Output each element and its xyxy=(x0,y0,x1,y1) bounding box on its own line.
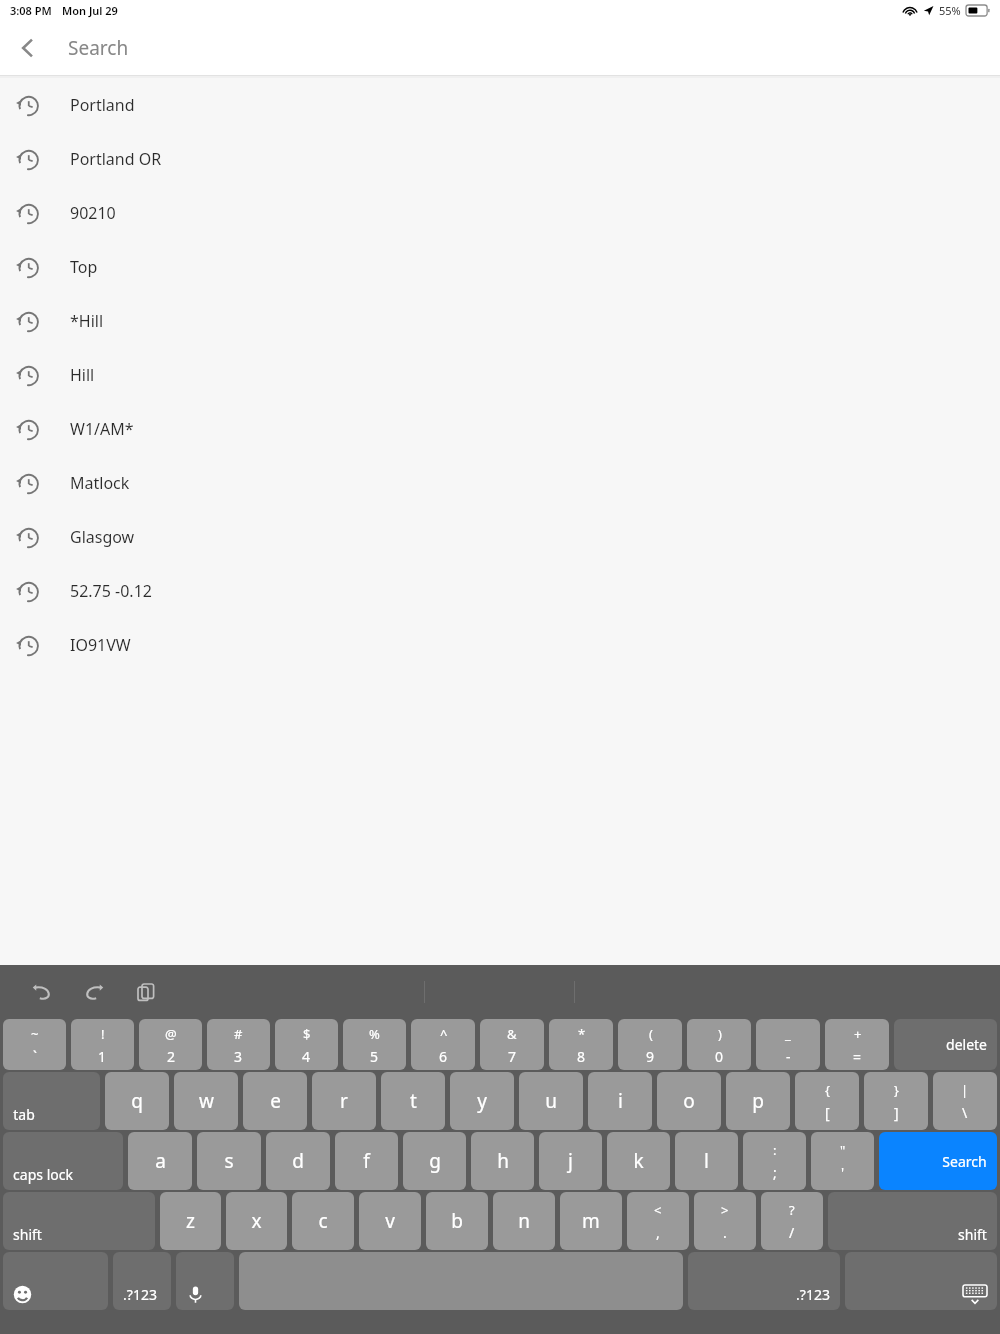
staticText: ` xyxy=(33,1047,37,1064)
staticText: b xyxy=(451,1208,463,1234)
staticText: ] xyxy=(894,1103,899,1122)
staticText: & xyxy=(507,1025,517,1043)
button[interactable]: Redo xyxy=(74,972,114,1012)
staticText: 5 xyxy=(370,1047,379,1064)
button[interactable]: e xyxy=(243,1072,307,1130)
staticText: 9 xyxy=(646,1047,655,1064)
button[interactable]: { xyxy=(795,1072,859,1130)
staticText: s xyxy=(224,1148,234,1174)
button[interactable]: Top xyxy=(0,240,1000,294)
button[interactable]: % xyxy=(343,1019,406,1070)
button[interactable]: x xyxy=(226,1192,287,1250)
button[interactable]: q xyxy=(105,1072,169,1130)
staticText: z xyxy=(186,1208,195,1234)
button[interactable]: Back xyxy=(0,20,56,75)
button[interactable]: > xyxy=(694,1192,756,1250)
staticText: ; xyxy=(773,1163,777,1182)
button[interactable]: c xyxy=(292,1192,354,1250)
button[interactable]: m xyxy=(560,1192,622,1250)
button[interactable]: f xyxy=(335,1132,398,1190)
button[interactable]: .?123 xyxy=(688,1252,840,1310)
button[interactable]: shift xyxy=(828,1192,997,1250)
button[interactable]: ~ xyxy=(3,1019,66,1070)
button[interactable]: Portland xyxy=(0,78,1000,132)
button[interactable]: | xyxy=(933,1072,997,1130)
button[interactable]: _ xyxy=(756,1019,820,1070)
button[interactable]: Undo xyxy=(22,972,62,1012)
button[interactable]: Matlock xyxy=(0,456,1000,510)
button[interactable]: } xyxy=(864,1072,928,1130)
button[interactable]: z xyxy=(160,1192,221,1250)
button[interactable]: # xyxy=(207,1019,270,1070)
button[interactable]: ! xyxy=(71,1019,134,1070)
button[interactable]: t xyxy=(381,1072,445,1130)
button[interactable]: Portland OR xyxy=(0,132,1000,186)
button[interactable]: v xyxy=(359,1192,421,1250)
button[interactable]: k xyxy=(607,1132,670,1190)
staticText: } xyxy=(894,1081,899,1099)
button[interactable]: < xyxy=(627,1192,689,1250)
staticText: v xyxy=(385,1208,395,1234)
button[interactable]: ( xyxy=(618,1019,682,1070)
button[interactable]: l xyxy=(675,1132,738,1190)
staticText: W1/AM* xyxy=(70,418,134,440)
staticText: w xyxy=(199,1088,214,1114)
button[interactable]: Search xyxy=(879,1132,997,1190)
staticText: # xyxy=(234,1025,243,1043)
button[interactable]: tab xyxy=(3,1072,100,1130)
button[interactable]: 90210 xyxy=(0,186,1000,240)
button[interactable]: a xyxy=(128,1132,192,1190)
staticText: q xyxy=(131,1088,143,1114)
staticText: < xyxy=(654,1201,662,1219)
button[interactable]: Hill xyxy=(0,348,1000,402)
button[interactable]: u xyxy=(519,1072,583,1130)
button[interactable]: & xyxy=(480,1019,544,1070)
button[interactable]: " xyxy=(811,1132,874,1190)
button[interactable]: s xyxy=(197,1132,261,1190)
staticText: ~ xyxy=(31,1025,39,1043)
button[interactable]: Paste xyxy=(126,972,166,1012)
button[interactable]: y xyxy=(450,1072,514,1130)
button[interactable]: W1/AM* xyxy=(0,402,1000,456)
button[interactable]: r xyxy=(312,1072,376,1130)
button[interactable]: g xyxy=(403,1132,466,1190)
button[interactable]: o xyxy=(657,1072,721,1130)
button[interactable]: w xyxy=(174,1072,238,1130)
staticText: p xyxy=(752,1088,764,1114)
button[interactable]: ? xyxy=(761,1192,823,1250)
button[interactable]: p xyxy=(726,1072,790,1130)
button[interactable]: Glasgow xyxy=(0,510,1000,564)
staticText: | xyxy=(961,1081,969,1099)
button[interactable]: @ xyxy=(139,1019,202,1070)
button[interactable]: caps lock xyxy=(3,1132,123,1190)
staticText: c xyxy=(318,1208,328,1234)
button[interactable]: j xyxy=(539,1132,602,1190)
staticText: - xyxy=(786,1047,791,1064)
button[interactable]: .?123 xyxy=(113,1252,171,1310)
staticText: Portland xyxy=(70,94,135,116)
button[interactable]: n xyxy=(493,1192,555,1250)
button[interactable]: : xyxy=(743,1132,806,1190)
staticText: 8 xyxy=(577,1047,586,1064)
button[interactable]: ^ xyxy=(411,1019,475,1070)
button[interactable]: ) xyxy=(687,1019,751,1070)
staticText: shift xyxy=(13,1225,42,1244)
button[interactable]: h xyxy=(471,1132,534,1190)
button[interactable]: i xyxy=(588,1072,652,1130)
button[interactable]: Emoji xyxy=(3,1252,108,1310)
button[interactable]: shift xyxy=(3,1192,155,1250)
button[interactable]: b xyxy=(426,1192,488,1250)
button[interactable]: Dictation xyxy=(176,1252,234,1310)
button[interactable]: d xyxy=(266,1132,330,1190)
button[interactable]: $ xyxy=(275,1019,338,1070)
button[interactable]: *Hill xyxy=(0,294,1000,348)
button[interactable]: * xyxy=(549,1019,613,1070)
button[interactable]: Hide keyboard xyxy=(845,1252,997,1310)
button[interactable]: IO91VW xyxy=(0,618,1000,672)
button[interactable]: + xyxy=(825,1019,889,1070)
button[interactable]: 52.75 -0.12 xyxy=(0,564,1000,618)
staticText: .?123 xyxy=(796,1285,830,1304)
staticText: o xyxy=(683,1088,695,1114)
button[interactable]: delete xyxy=(894,1019,997,1070)
